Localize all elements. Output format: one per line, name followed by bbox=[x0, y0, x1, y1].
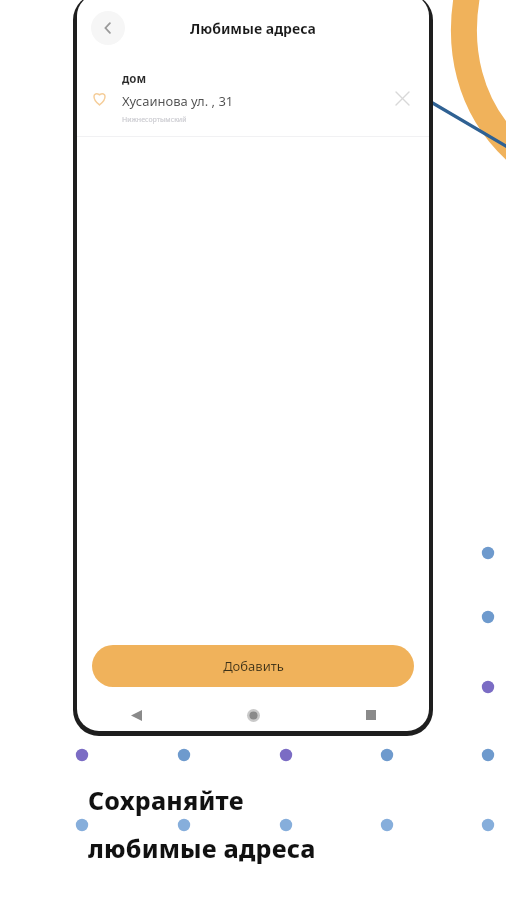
staticText: Добавить bbox=[223, 657, 284, 675]
button[interactable]: Назад bbox=[91, 11, 125, 45]
button[interactable]: Главный экран bbox=[195, 699, 312, 731]
button[interactable]: дом bbox=[77, 60, 429, 136]
staticText: Нижнесортымский bbox=[122, 115, 187, 125]
staticText: Любимые адреса bbox=[190, 19, 316, 38]
staticText: любимые адреса bbox=[88, 831, 316, 865]
button[interactable]: Недавние приложения bbox=[312, 699, 429, 731]
staticText: Сохраняйте bbox=[88, 783, 244, 817]
button[interactable]: Добавить bbox=[92, 645, 414, 687]
button[interactable]: Назад bbox=[77, 699, 195, 731]
button[interactable]: Удалить bbox=[385, 81, 419, 115]
staticText: Хусаинова ул. , 31 bbox=[122, 92, 234, 110]
staticText: дом bbox=[122, 71, 147, 87]
